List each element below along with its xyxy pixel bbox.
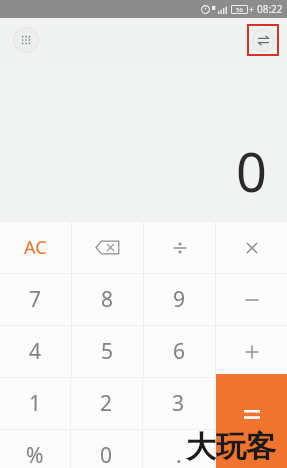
staticText: 56	[236, 6, 243, 14]
button[interactable]: Apps	[13, 27, 39, 53]
button[interactable]: Equals	[216, 374, 287, 468]
button[interactable]: Convert	[247, 24, 279, 56]
button[interactable]: 8	[72, 274, 143, 325]
button[interactable]: .	[143, 430, 214, 468]
staticText: +	[249, 4, 254, 15]
staticText: 4	[29, 337, 42, 366]
staticText: 1	[29, 389, 42, 418]
button[interactable]: 4	[0, 326, 71, 377]
staticText: 6	[173, 337, 186, 366]
staticText: 08:22	[257, 2, 283, 16]
staticText: 0	[100, 441, 113, 468]
button[interactable]: Plus	[216, 326, 287, 377]
staticText: 5	[101, 337, 114, 366]
staticText: 大玩客	[186, 428, 276, 466]
staticText: 9	[173, 285, 186, 314]
button[interactable]: Divide	[144, 222, 215, 273]
button[interactable]: 7	[0, 274, 71, 325]
button[interactable]: Backspace	[72, 222, 143, 273]
button[interactable]: AC	[0, 222, 71, 273]
button[interactable]: 1	[0, 378, 70, 429]
button[interactable]: Multiply	[216, 222, 287, 273]
staticText: %	[26, 441, 44, 468]
button[interactable]: 9	[144, 274, 215, 325]
staticText: .	[176, 441, 182, 468]
staticText: AC	[24, 235, 47, 260]
button[interactable]: %	[0, 430, 70, 468]
staticText: 8	[101, 285, 114, 314]
staticText: 7	[29, 285, 42, 314]
button[interactable]: 5	[72, 326, 143, 377]
staticText: 0	[0, 134, 267, 208]
button[interactable]: 6	[144, 326, 215, 377]
button[interactable]: 0	[71, 430, 142, 468]
staticText: 3	[172, 389, 185, 418]
button[interactable]: Minus	[216, 274, 287, 325]
staticText: 2	[100, 389, 113, 418]
button[interactable]: 3	[143, 378, 214, 429]
button[interactable]: 2	[71, 378, 142, 429]
